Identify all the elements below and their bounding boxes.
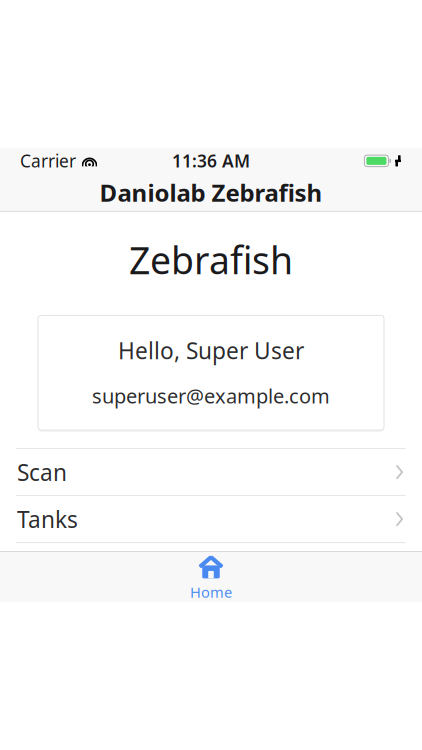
- button[interactable]: Tanks: [0, 496, 422, 542]
- staticText: Scan: [17, 457, 67, 487]
- staticText: Daniolab Zebrafish: [99, 176, 322, 208]
- staticText: Home: [190, 582, 232, 602]
- staticText: Hello, Super User: [118, 335, 304, 366]
- button[interactable]: Scan: [0, 449, 422, 495]
- staticText: Tanks: [17, 504, 78, 534]
- staticText: Carrier: [20, 149, 76, 172]
- staticText: Zebrafish: [129, 235, 293, 284]
- staticText: 11:36 AM: [172, 149, 250, 172]
- button[interactable]: Home: [0, 552, 422, 602]
- staticText: superuser@example.com: [92, 383, 330, 409]
